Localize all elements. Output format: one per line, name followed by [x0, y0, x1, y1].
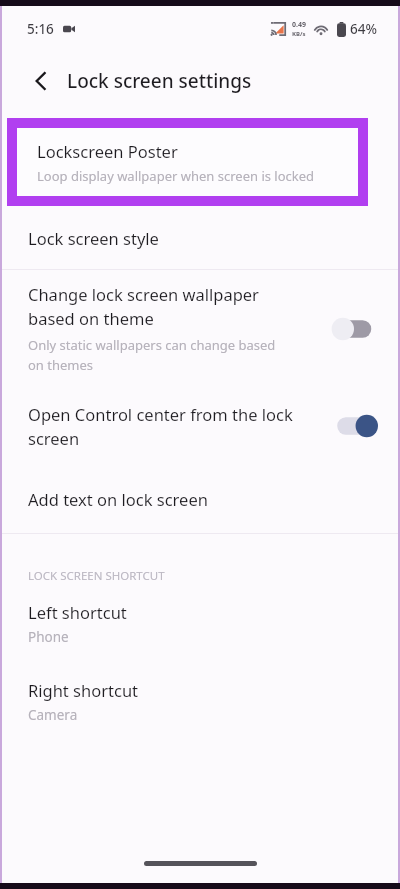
staticText: based on theme: [28, 307, 154, 329]
staticText: Lockscreen Poster: [37, 140, 178, 162]
button[interactable]: Toggle off: [334, 315, 380, 343]
button[interactable]: Change lock screen wallpaper: [0, 270, 400, 387]
staticText: 5:16: [27, 20, 54, 38]
staticText: 0.49: [292, 20, 306, 30]
staticText: Phone: [28, 628, 69, 646]
staticText: Open Control center from the lock: [28, 403, 293, 425]
button[interactable]: Lockscreen Poster: [17, 128, 358, 196]
button[interactable]: Right shortcut: [0, 662, 400, 740]
button[interactable]: Add text on lock screen: [0, 465, 400, 533]
button[interactable]: Open Control center from the lock: [0, 387, 400, 465]
staticText: on themes: [28, 356, 94, 374]
staticText: Add text on lock screen: [28, 488, 208, 510]
staticText: 64%: [350, 20, 377, 38]
button[interactable]: Toggle on: [334, 412, 380, 440]
button[interactable]: Left shortcut: [0, 584, 400, 662]
staticText: Loop display wallpaper when screen is lo…: [37, 167, 315, 185]
button[interactable]: Back: [24, 64, 58, 98]
staticText: screen: [28, 427, 80, 449]
staticText: Only static wallpapers can change based: [28, 336, 276, 354]
staticText: Lock screen settings: [67, 68, 252, 94]
staticText: LOCK SCREEN SHORTCUT: [28, 568, 165, 584]
staticText: Change lock screen wallpaper: [28, 283, 259, 305]
staticText: KB/s: [292, 30, 306, 38]
staticText: Lock screen style: [28, 227, 159, 249]
staticText: Right shortcut: [28, 679, 139, 701]
staticText: Left shortcut: [28, 601, 127, 623]
staticText: Camera: [28, 706, 78, 724]
button[interactable]: Lock screen style: [0, 206, 400, 269]
